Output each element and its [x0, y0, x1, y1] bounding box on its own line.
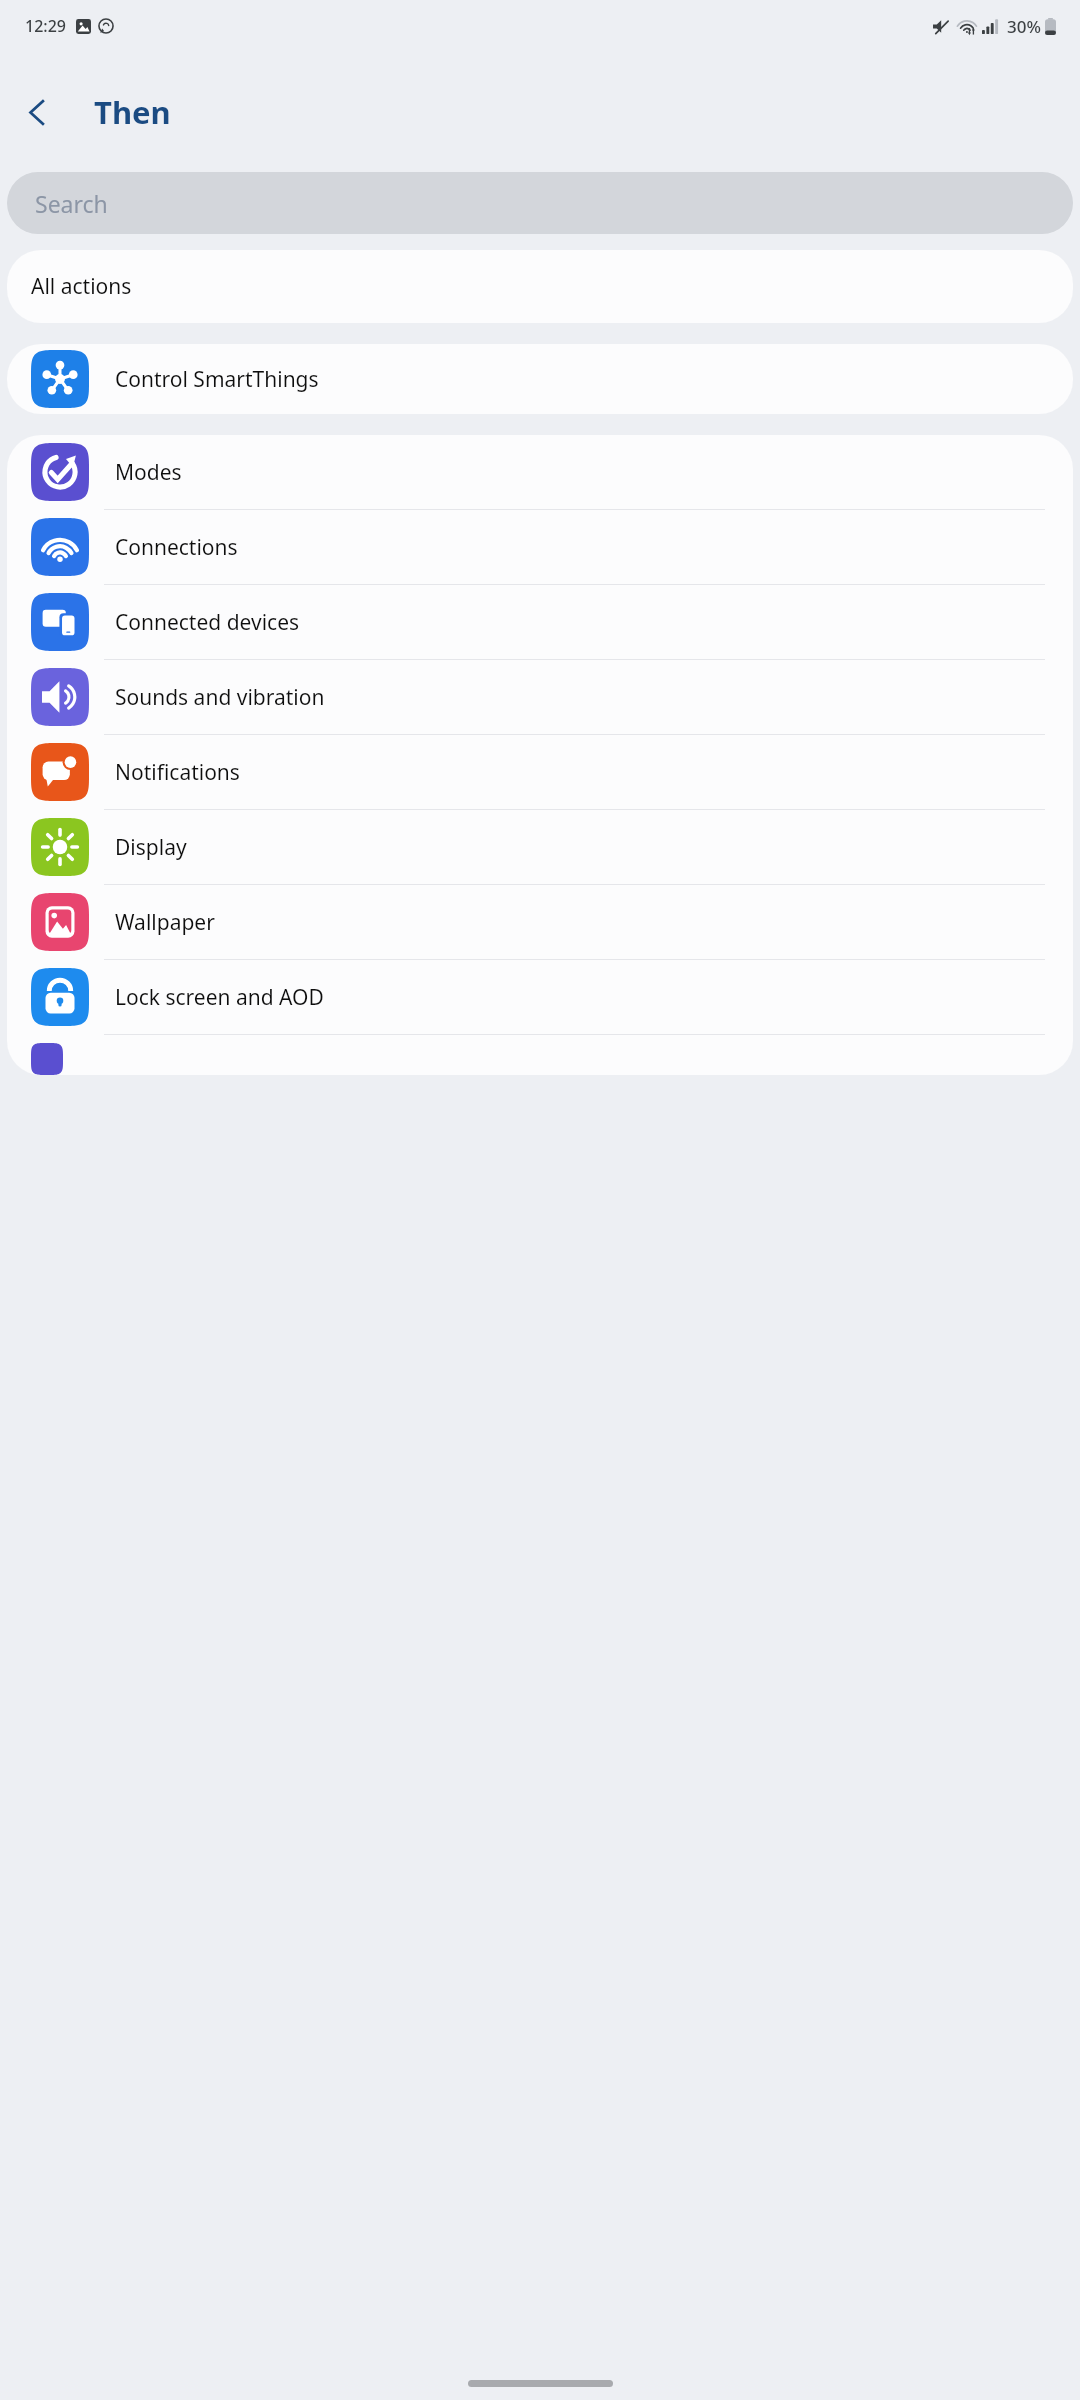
staticText: Notifications — [115, 758, 240, 787]
staticText: Connected devices — [115, 608, 300, 637]
button[interactable]: Modes — [7, 435, 1073, 509]
staticText: Control SmartThings — [115, 365, 319, 394]
staticText: Lock screen and AOD — [115, 983, 324, 1012]
button[interactable]: Control SmartThings — [7, 344, 1073, 414]
button[interactable]: Wallpaper — [7, 885, 1073, 959]
button[interactable]: Sounds and vibration — [7, 660, 1073, 734]
staticText: Connections — [115, 533, 238, 562]
button[interactable]: Search — [7, 172, 1073, 234]
staticText: Search — [35, 188, 108, 219]
staticText: 30% — [1007, 15, 1041, 38]
button[interactable]: Connected devices — [7, 585, 1073, 659]
button[interactable]: All actions — [7, 250, 1073, 323]
staticText: All actions — [31, 272, 132, 301]
staticText: Sounds and vibration — [115, 683, 325, 712]
button[interactable]: Notifications — [7, 735, 1073, 809]
button[interactable] — [7, 1035, 1073, 1075]
button[interactable]: Back — [0, 75, 74, 149]
staticText: 12:29 — [25, 15, 66, 37]
staticText: Modes — [115, 458, 182, 487]
button[interactable]: Lock screen and AOD — [7, 960, 1073, 1034]
button[interactable]: Connections — [7, 510, 1073, 584]
staticText: Display — [115, 833, 187, 862]
staticText: Wallpaper — [115, 908, 215, 937]
staticText: Then — [94, 91, 171, 133]
button[interactable]: Display — [7, 810, 1073, 884]
